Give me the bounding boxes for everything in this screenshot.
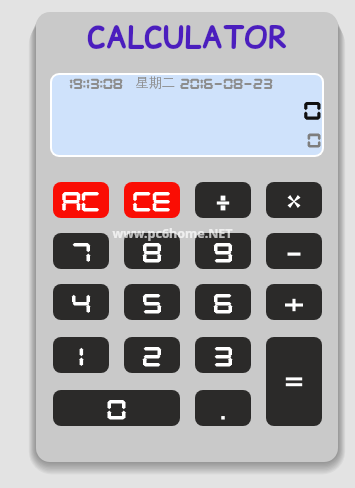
button[interactable]	[195, 233, 251, 269]
staticText: 星期二	[136, 75, 175, 90]
staticText: CALCULATOR	[87, 16, 288, 58]
button[interactable]: Minus	[266, 233, 322, 269]
button[interactable]: Decimal point	[195, 390, 251, 426]
button[interactable]: Divide	[195, 182, 251, 218]
button[interactable]	[53, 284, 109, 320]
staticText: www.pc6home.NET	[112, 225, 233, 242]
button[interactable]	[124, 337, 180, 373]
button[interactable]	[53, 337, 109, 373]
button[interactable]	[124, 284, 180, 320]
button[interactable]: Plus	[266, 284, 322, 320]
button[interactable]	[195, 337, 251, 373]
button[interactable]	[124, 233, 180, 269]
button[interactable]	[53, 233, 109, 269]
button[interactable]: Equals	[266, 337, 322, 426]
button[interactable]	[53, 182, 109, 218]
button[interactable]	[53, 390, 180, 426]
button[interactable]	[195, 284, 251, 320]
button[interactable]	[124, 182, 180, 218]
button[interactable]: Multiply	[266, 182, 322, 218]
